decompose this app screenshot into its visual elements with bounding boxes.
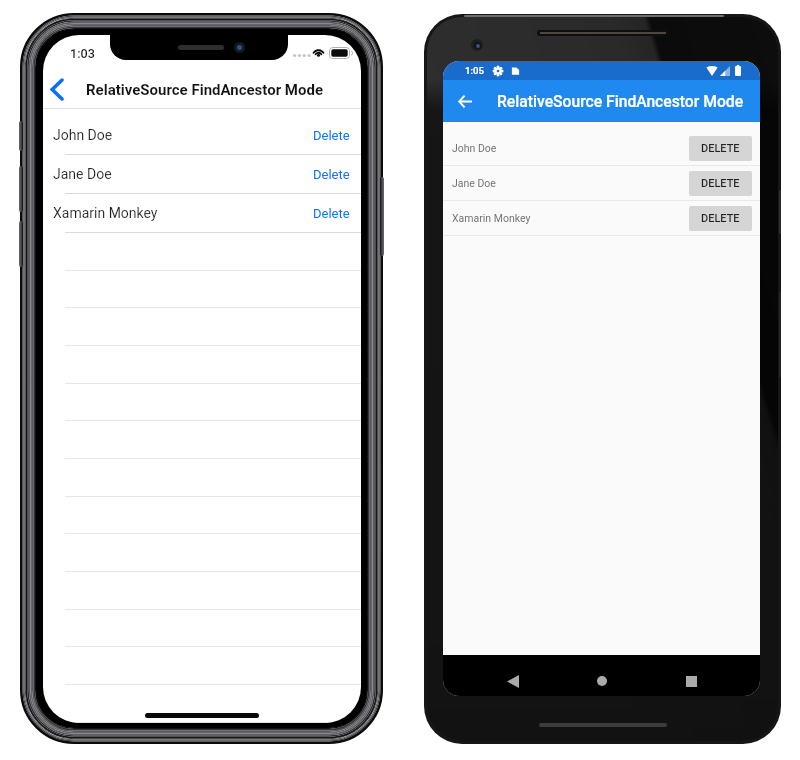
button[interactable]: DELETE [689,171,752,196]
button[interactable]: DELETE [689,136,752,161]
button[interactable]: John Doe [443,131,760,165]
button[interactable]: Recent apps [674,664,708,696]
staticText: RelativeSource FindAncestor Mode [497,92,744,110]
staticText: DELETE [701,142,740,155]
button[interactable]: Back [43,70,77,109]
staticText: Delete [313,167,350,182]
staticText: Jane Doe [452,177,496,189]
staticText: Delete [313,206,350,221]
button[interactable]: John Doe [43,116,361,154]
staticText: John Doe [452,142,497,154]
staticText: John Doe [53,127,113,143]
button[interactable]: Back [496,664,530,696]
button[interactable]: Xamarin Monkey [443,201,760,235]
staticText: RelativeSource FindAncestor Mode [86,81,324,99]
staticText: DELETE [701,177,740,190]
button[interactable]: Delete [307,128,361,143]
staticText: Delete [313,128,350,143]
button[interactable]: Delete [307,206,361,221]
button[interactable]: Jane Doe [43,155,361,193]
button[interactable]: Delete [307,167,361,182]
button[interactable]: DELETE [689,206,752,231]
button[interactable]: Back [450,87,479,116]
staticText: 1:03 [70,46,95,61]
staticText: Jane Doe [53,166,112,182]
button[interactable]: Xamarin Monkey [43,194,361,232]
staticText: 1:05 [465,65,484,76]
staticText: DELETE [701,212,740,225]
button[interactable]: Home [585,664,619,696]
staticText: Xamarin Monkey [53,205,158,221]
staticText: Xamarin Monkey [452,212,531,224]
button[interactable]: Jane Doe [443,166,760,200]
